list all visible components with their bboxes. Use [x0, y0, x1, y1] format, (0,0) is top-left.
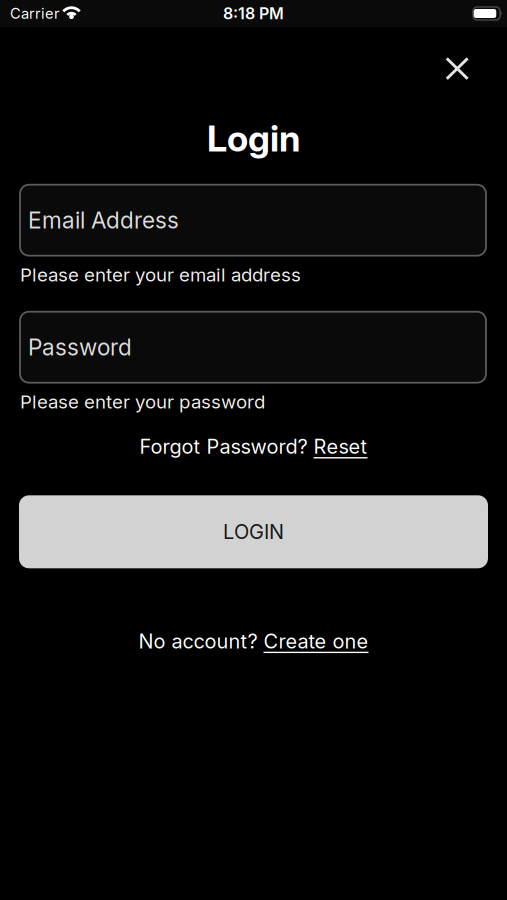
staticText: 8:18 PM — [223, 4, 284, 23]
button[interactable]: Password — [20, 312, 486, 383]
staticText: Carrier — [10, 5, 60, 22]
staticText: Reset — [313, 435, 367, 458]
button[interactable]: No account? — [138, 629, 368, 653]
button[interactable]: Close — [445, 57, 469, 80]
staticText: Login — [207, 117, 300, 160]
staticText: Email Address — [28, 207, 179, 233]
staticText: Please enter your password — [20, 391, 265, 413]
button[interactable]: LOGIN — [19, 495, 488, 568]
button[interactable]: Email Address — [20, 185, 486, 256]
staticText: Create one — [263, 629, 368, 653]
staticText: Forgot Password? — [139, 435, 313, 458]
staticText: Password — [28, 334, 132, 360]
staticText: No account? — [138, 629, 263, 653]
staticText: LOGIN — [223, 520, 284, 544]
button[interactable]: Forgot Password? — [139, 435, 367, 458]
staticText: Please enter your email address — [20, 264, 301, 286]
